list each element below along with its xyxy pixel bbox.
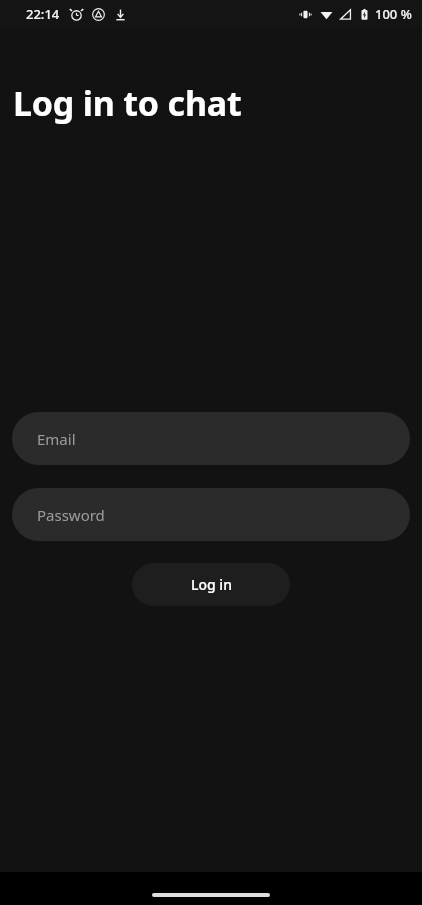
staticText: Log in [191,575,232,594]
staticText: Log in to chat [13,80,242,126]
staticText: Password [37,505,105,525]
staticText: Email [37,429,76,449]
staticText: 22:14 [26,5,60,23]
button[interactable]: Email [12,412,410,465]
staticText: 100 % [375,5,412,23]
button[interactable]: Password [12,488,410,541]
button[interactable]: Log in [132,563,290,606]
